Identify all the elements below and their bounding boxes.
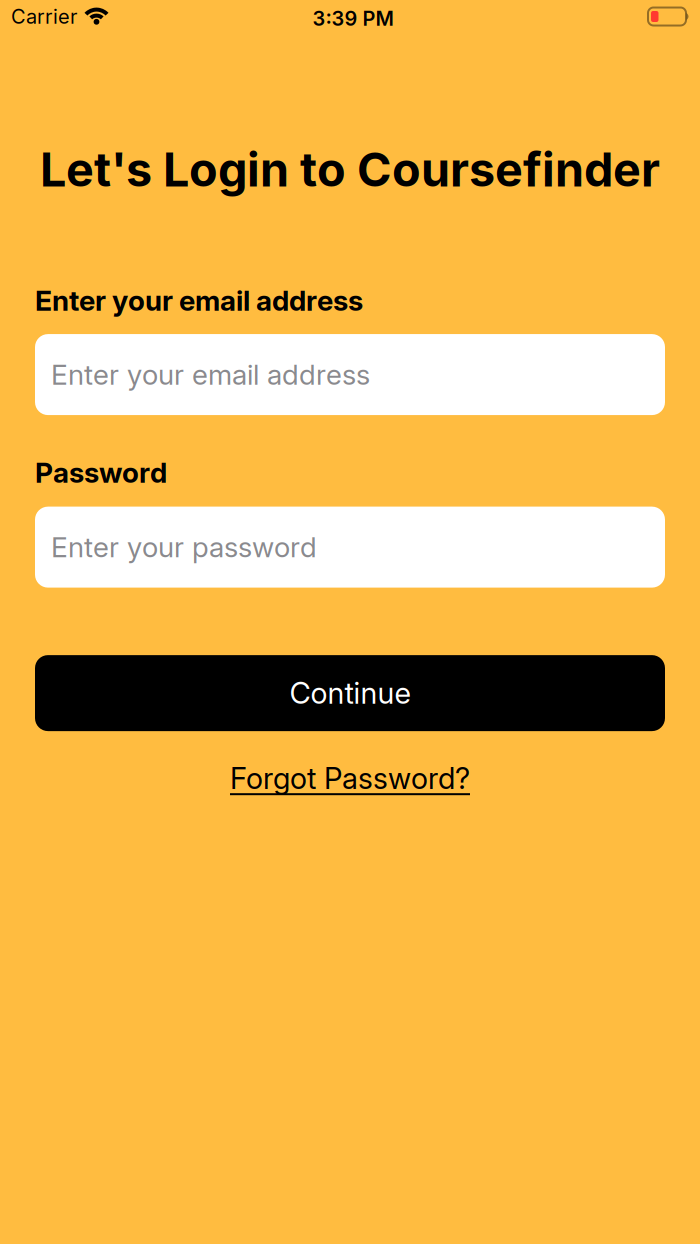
button[interactable]: Enter your password xyxy=(35,507,665,588)
staticText: Password xyxy=(35,456,167,489)
button[interactable]: Enter your email address xyxy=(35,334,665,415)
staticText: Forgot Password? xyxy=(230,761,470,796)
staticText: Enter your email address xyxy=(35,284,363,317)
staticText: Let's Login to Coursefinder xyxy=(40,142,660,197)
staticText: Enter your email address xyxy=(51,358,370,391)
staticText: 3:39 PM xyxy=(312,7,393,30)
staticText: Enter your password xyxy=(51,531,317,564)
staticText: Continue xyxy=(289,676,410,710)
button[interactable]: Forgot Password? xyxy=(230,761,470,796)
button[interactable]: Continue xyxy=(35,655,665,731)
staticText: Carrier xyxy=(11,5,77,28)
